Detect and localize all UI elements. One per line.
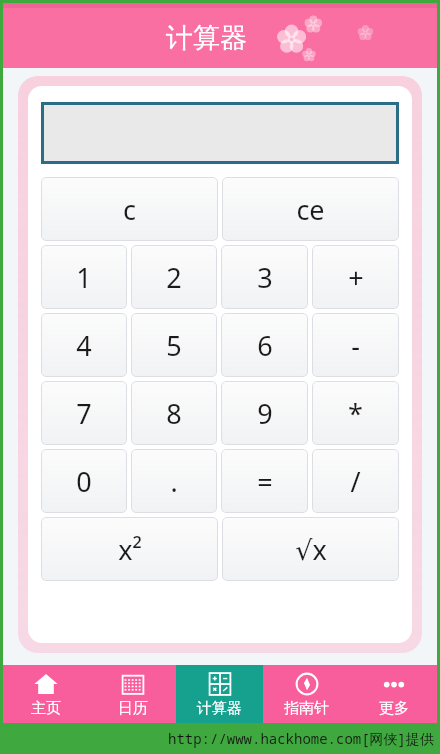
button[interactable]: 7 [41,381,127,445]
button[interactable]: 4 [41,313,127,377]
button[interactable]: 计算器 [176,665,263,723]
button[interactable]: = [221,449,308,513]
button[interactable]: / [312,449,399,513]
button[interactable]: 0 [41,449,127,513]
button[interactable]: 6 [221,313,308,377]
staticText: 日历 [118,699,148,718]
button[interactable]: x² [41,517,218,581]
staticText: - [351,327,360,364]
staticText: ce [296,191,325,228]
button[interactable]: 指南针 [263,665,350,723]
staticText: = [257,463,273,500]
staticText: 计算器 [166,21,247,55]
staticText: . [170,463,178,500]
button[interactable]: 主页 [3,665,89,723]
staticText: / [350,463,361,500]
button[interactable]: * [312,381,399,445]
button[interactable]: 2 [131,245,217,309]
staticText: √x [295,531,327,568]
button[interactable]: + [312,245,399,309]
staticText: 3 [257,259,273,296]
staticText: 2 [166,259,182,296]
staticText: 9 [257,395,273,432]
staticText: 6 [257,327,273,364]
button[interactable]: c [41,177,218,241]
button[interactable]: 更多 [350,665,437,723]
staticText: 4 [76,327,92,364]
button[interactable]: 5 [131,313,217,377]
button[interactable]: 9 [221,381,308,445]
staticText: 1 [76,259,92,296]
staticText: 7 [76,395,92,432]
button[interactable]: 8 [131,381,217,445]
button[interactable]: 日历 [89,665,176,723]
staticText: c [123,191,136,228]
staticText: 主页 [31,699,61,718]
staticText: + [348,259,364,296]
staticText: * [348,395,363,432]
button[interactable]: - [312,313,399,377]
button[interactable]: . [131,449,217,513]
staticText: 指南针 [284,699,329,718]
staticText: 更多 [379,699,409,718]
staticText: 0 [76,463,92,500]
staticText: 8 [166,395,182,432]
button[interactable]: 3 [221,245,308,309]
staticText: http://www.hackhome.com[网侠]提供 [168,729,434,748]
staticText: 5 [166,327,182,364]
button[interactable]: 1 [41,245,127,309]
staticText: 计算器 [197,699,242,718]
button[interactable]: √x [222,517,399,581]
button[interactable]: ce [222,177,399,241]
staticText: x² [118,531,142,568]
